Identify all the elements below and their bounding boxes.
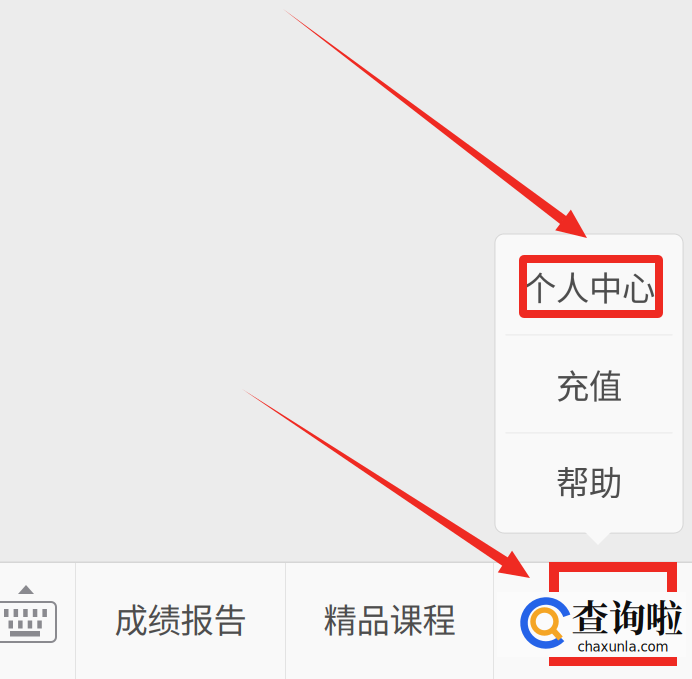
button[interactable]: 精品课程 [286, 563, 493, 679]
staticText: 查询啦 [571, 589, 682, 643]
staticText: 帮助 [556, 456, 622, 505]
button[interactable]: 充值 [495, 335, 683, 432]
staticText: chaxunla.com [577, 639, 668, 655]
button[interactable]: 成绩报告 [76, 563, 285, 679]
button[interactable]: 个人中心 [495, 233, 683, 334]
staticText: 充值 [556, 360, 622, 408]
button[interactable]: 帮助 [495, 433, 683, 533]
staticText: 个人中心 [523, 262, 655, 310]
button[interactable]: Keyboard [0, 563, 75, 679]
staticText: 成绩报告 [114, 594, 246, 642]
staticText: 精品课程 [323, 594, 455, 642]
